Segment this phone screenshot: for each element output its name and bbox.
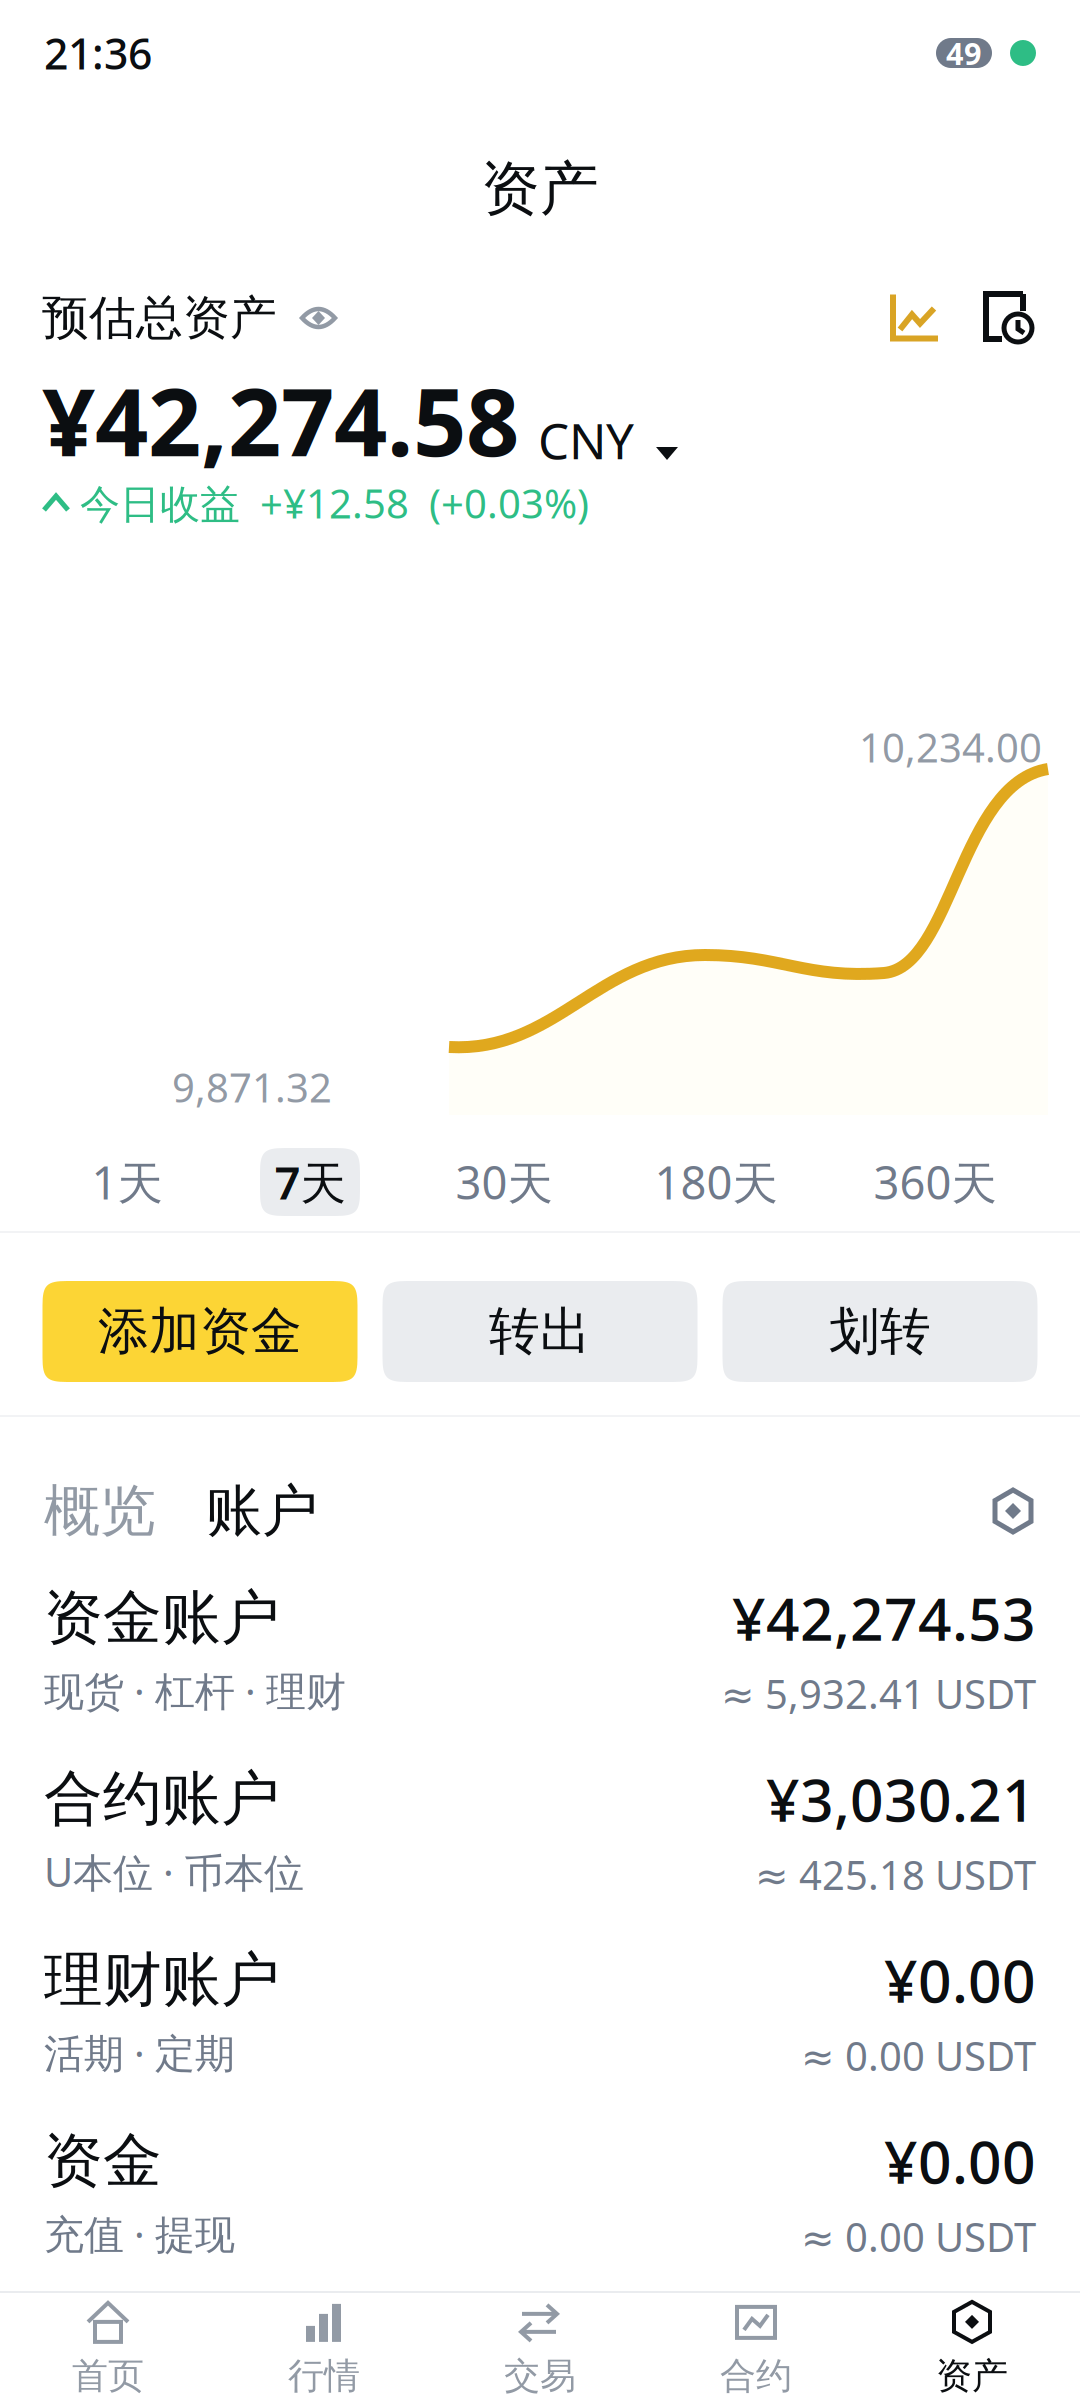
- staticText: ¥3,030.21: [766, 1760, 1036, 1838]
- button[interactable]: 180天: [630, 1148, 802, 1216]
- staticText: ≈ 5,932.41 USDT: [721, 1667, 1036, 1720]
- staticText: 21:36: [44, 25, 152, 81]
- button[interactable]: 交易: [432, 2293, 648, 2400]
- staticText: ≈ 0.00 USDT: [801, 2210, 1036, 2263]
- button[interactable]: 合约账户: [0, 1740, 1080, 1921]
- button[interactable]: 交易记录: [982, 290, 1038, 346]
- staticText: 180天: [654, 1152, 777, 1212]
- staticText: ≈ 0.00 USDT: [801, 2029, 1036, 2082]
- staticText: 充值 · 提现: [44, 2207, 235, 2260]
- button[interactable]: 添加资金: [42, 1281, 357, 1382]
- button[interactable]: 30天: [436, 1148, 572, 1216]
- button[interactable]: 资金: [0, 2102, 1080, 2283]
- staticText: 概览: [44, 1477, 156, 1545]
- staticText: 现货 · 杠杆 · 理财: [44, 1664, 346, 1717]
- button[interactable]: 合约: [648, 2293, 864, 2400]
- staticText: 资金账户: [44, 1582, 280, 1654]
- staticText: 理财账户: [44, 1944, 280, 2016]
- staticText: 资产: [936, 2354, 1008, 2398]
- staticText: 交易: [504, 2354, 576, 2398]
- staticText: 49: [946, 33, 982, 73]
- button[interactable]: 资产: [864, 2293, 1080, 2400]
- staticText: 360天: [873, 1152, 996, 1212]
- staticText: 添加资金: [98, 1300, 302, 1363]
- staticText: ¥0.00: [884, 2122, 1036, 2200]
- staticText: 账户: [206, 1477, 318, 1545]
- staticText: ¥42,274.58: [42, 358, 519, 482]
- button[interactable]: 概览: [44, 1477, 156, 1545]
- button[interactable]: 转出: [382, 1281, 697, 1382]
- button[interactable]: 1天: [77, 1148, 177, 1216]
- staticText: 活期 · 定期: [44, 2026, 235, 2079]
- button[interactable]: 理财账户: [0, 1921, 1080, 2102]
- staticText: 9,871.32: [172, 1060, 332, 1113]
- staticText: ≈ 425.18 USDT: [755, 1848, 1036, 1901]
- staticText: CNY: [538, 407, 634, 473]
- button[interactable]: 资产分析: [890, 294, 938, 341]
- button[interactable]: 账户管理: [990, 1487, 1036, 1535]
- staticText: 30天: [455, 1152, 552, 1212]
- staticText: 首页: [72, 2354, 144, 2398]
- staticText: ¥42,274.53: [732, 1579, 1036, 1657]
- staticText: U本位 · 币本位: [44, 1845, 304, 1898]
- staticText: 行情: [288, 2354, 360, 2398]
- button[interactable]: 资金账户: [0, 1559, 1080, 1740]
- button[interactable]: 首页: [0, 2293, 216, 2400]
- staticText: 10,234.00: [859, 720, 1042, 773]
- button[interactable]: 7天: [260, 1148, 360, 1216]
- staticText: 转出: [489, 1300, 591, 1363]
- staticText: 资金: [44, 2125, 162, 2197]
- staticText: 今日收益 +¥12.58 (+0.03%): [80, 476, 589, 529]
- staticText: 1天: [91, 1152, 162, 1212]
- staticText: 预估总资产: [42, 289, 277, 347]
- button[interactable]: 行情: [216, 2293, 432, 2400]
- button[interactable]: 账户: [206, 1477, 318, 1545]
- button[interactable]: 360天: [849, 1148, 1021, 1216]
- button[interactable]: 划转: [722, 1281, 1037, 1382]
- staticText: 合约: [720, 2354, 792, 2398]
- staticText: ¥0.00: [884, 1941, 1036, 2019]
- staticText: 划转: [829, 1300, 931, 1363]
- staticText: 7天: [274, 1152, 345, 1212]
- staticText: 合约账户: [44, 1763, 280, 1835]
- staticText: 资产: [481, 153, 599, 225]
